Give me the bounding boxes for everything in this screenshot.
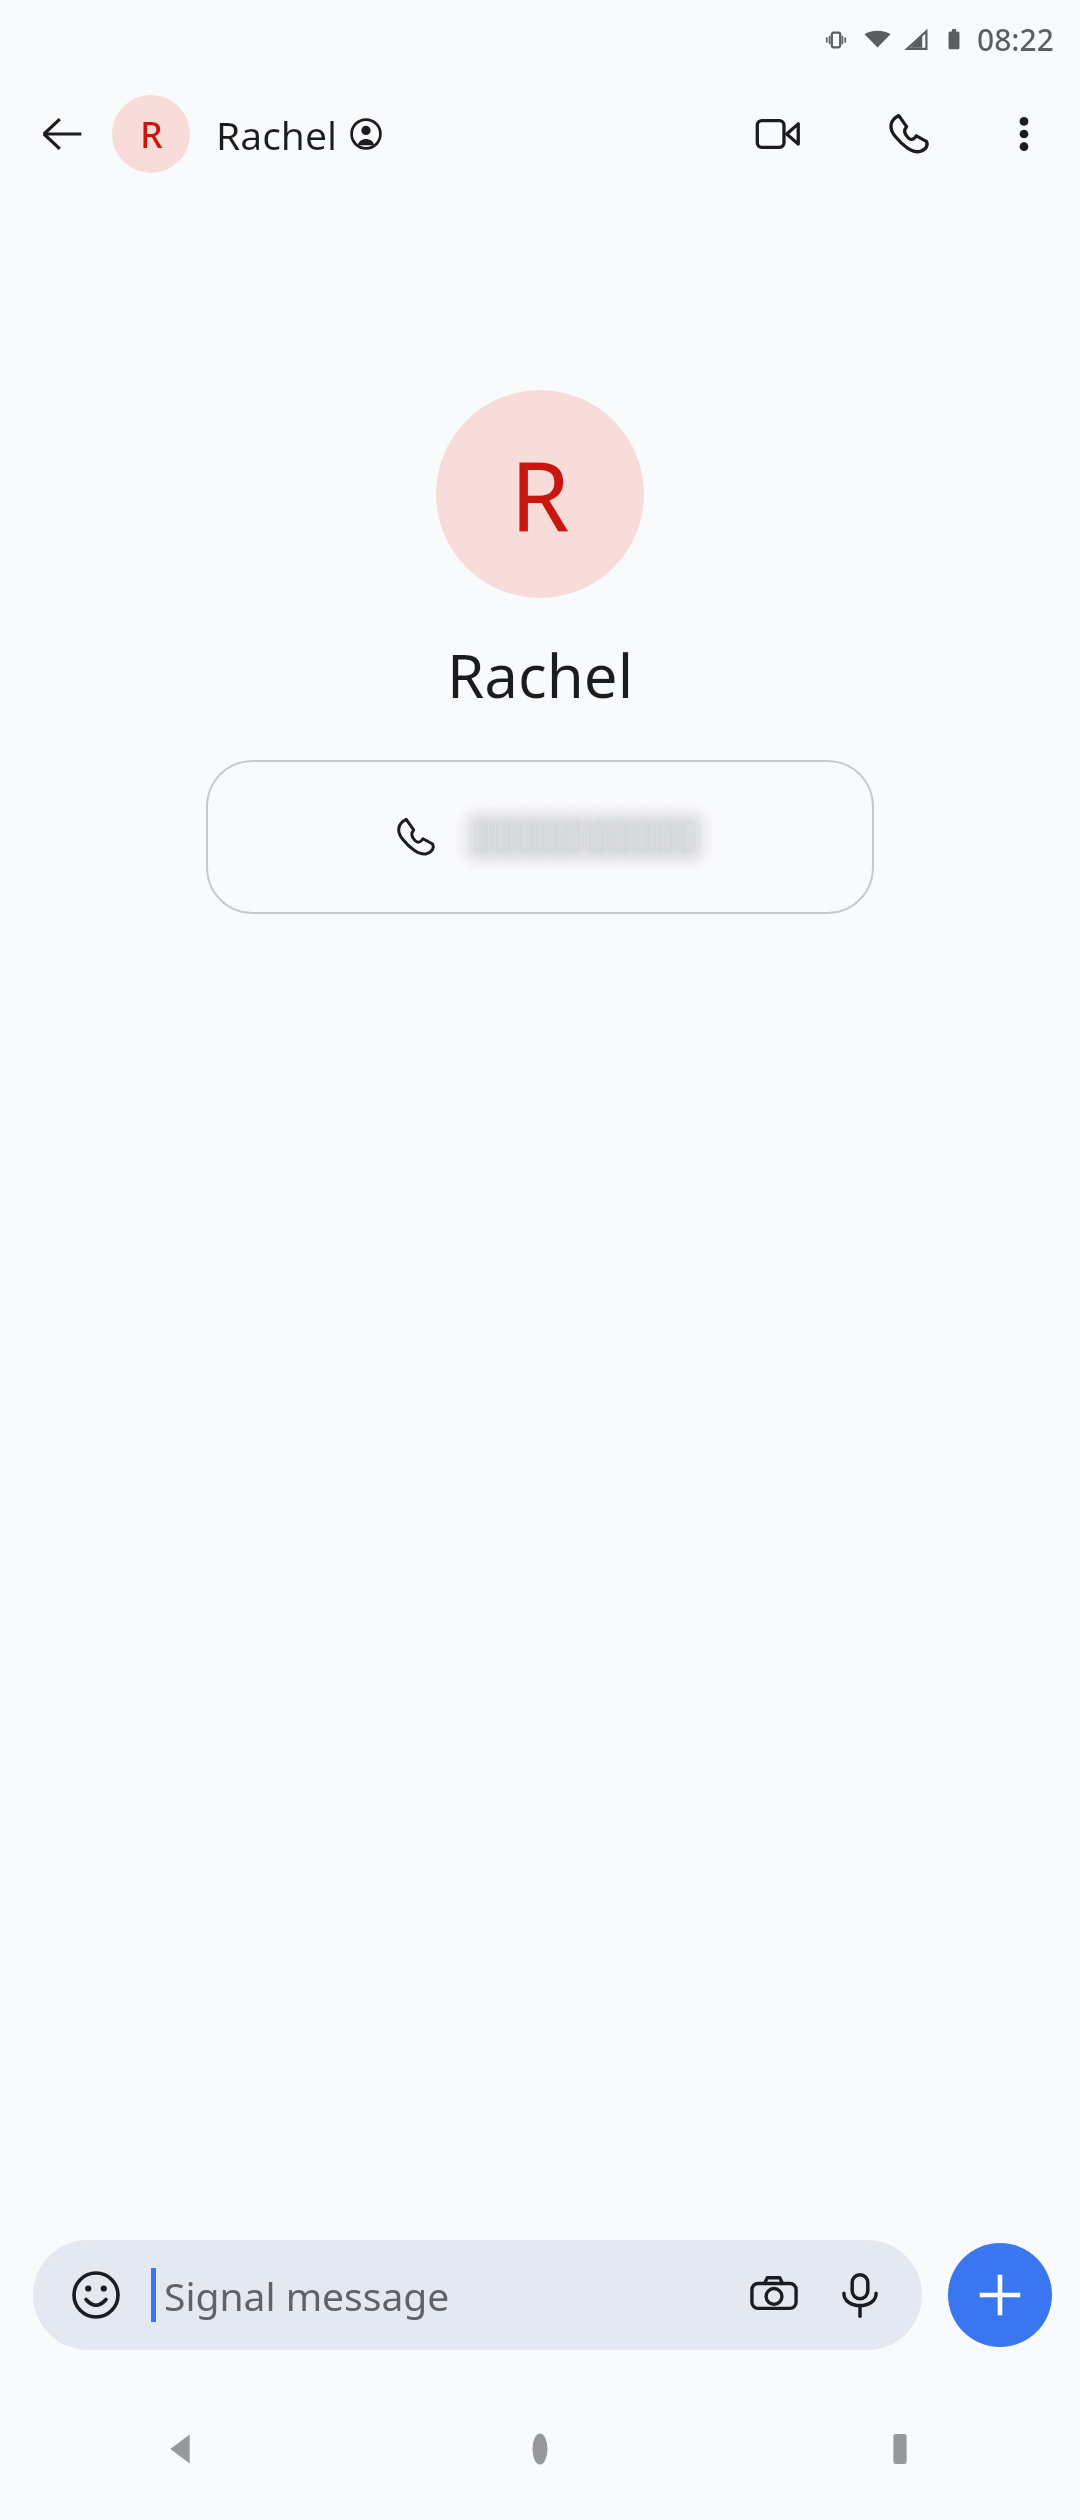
button[interactable]: Signal message	[33, 2240, 922, 2350]
staticText: R	[140, 110, 163, 159]
button[interactable]: Camera	[736, 2257, 812, 2333]
staticText: R	[510, 429, 570, 560]
button[interactable]: Voice call	[864, 90, 952, 178]
button[interactable]: Recent apps	[720, 2378, 1080, 2520]
button[interactable]: Home	[360, 2378, 720, 2520]
staticText: 08:22	[977, 19, 1054, 60]
button[interactable]: Back	[26, 98, 98, 170]
button[interactable]: Back	[0, 2378, 360, 2520]
button[interactable]: R	[436, 390, 644, 598]
button[interactable]: Add attachment	[948, 2243, 1052, 2347]
staticText: Rachel	[447, 634, 634, 716]
button[interactable]	[206, 760, 874, 914]
button[interactable]: Video call	[734, 90, 822, 178]
staticText: Signal message	[164, 2269, 736, 2322]
button[interactable]: R	[112, 95, 734, 173]
button[interactable]: More options	[986, 96, 1062, 172]
button[interactable]: Voice message	[822, 2257, 898, 2333]
staticText: Rachel	[216, 108, 338, 161]
